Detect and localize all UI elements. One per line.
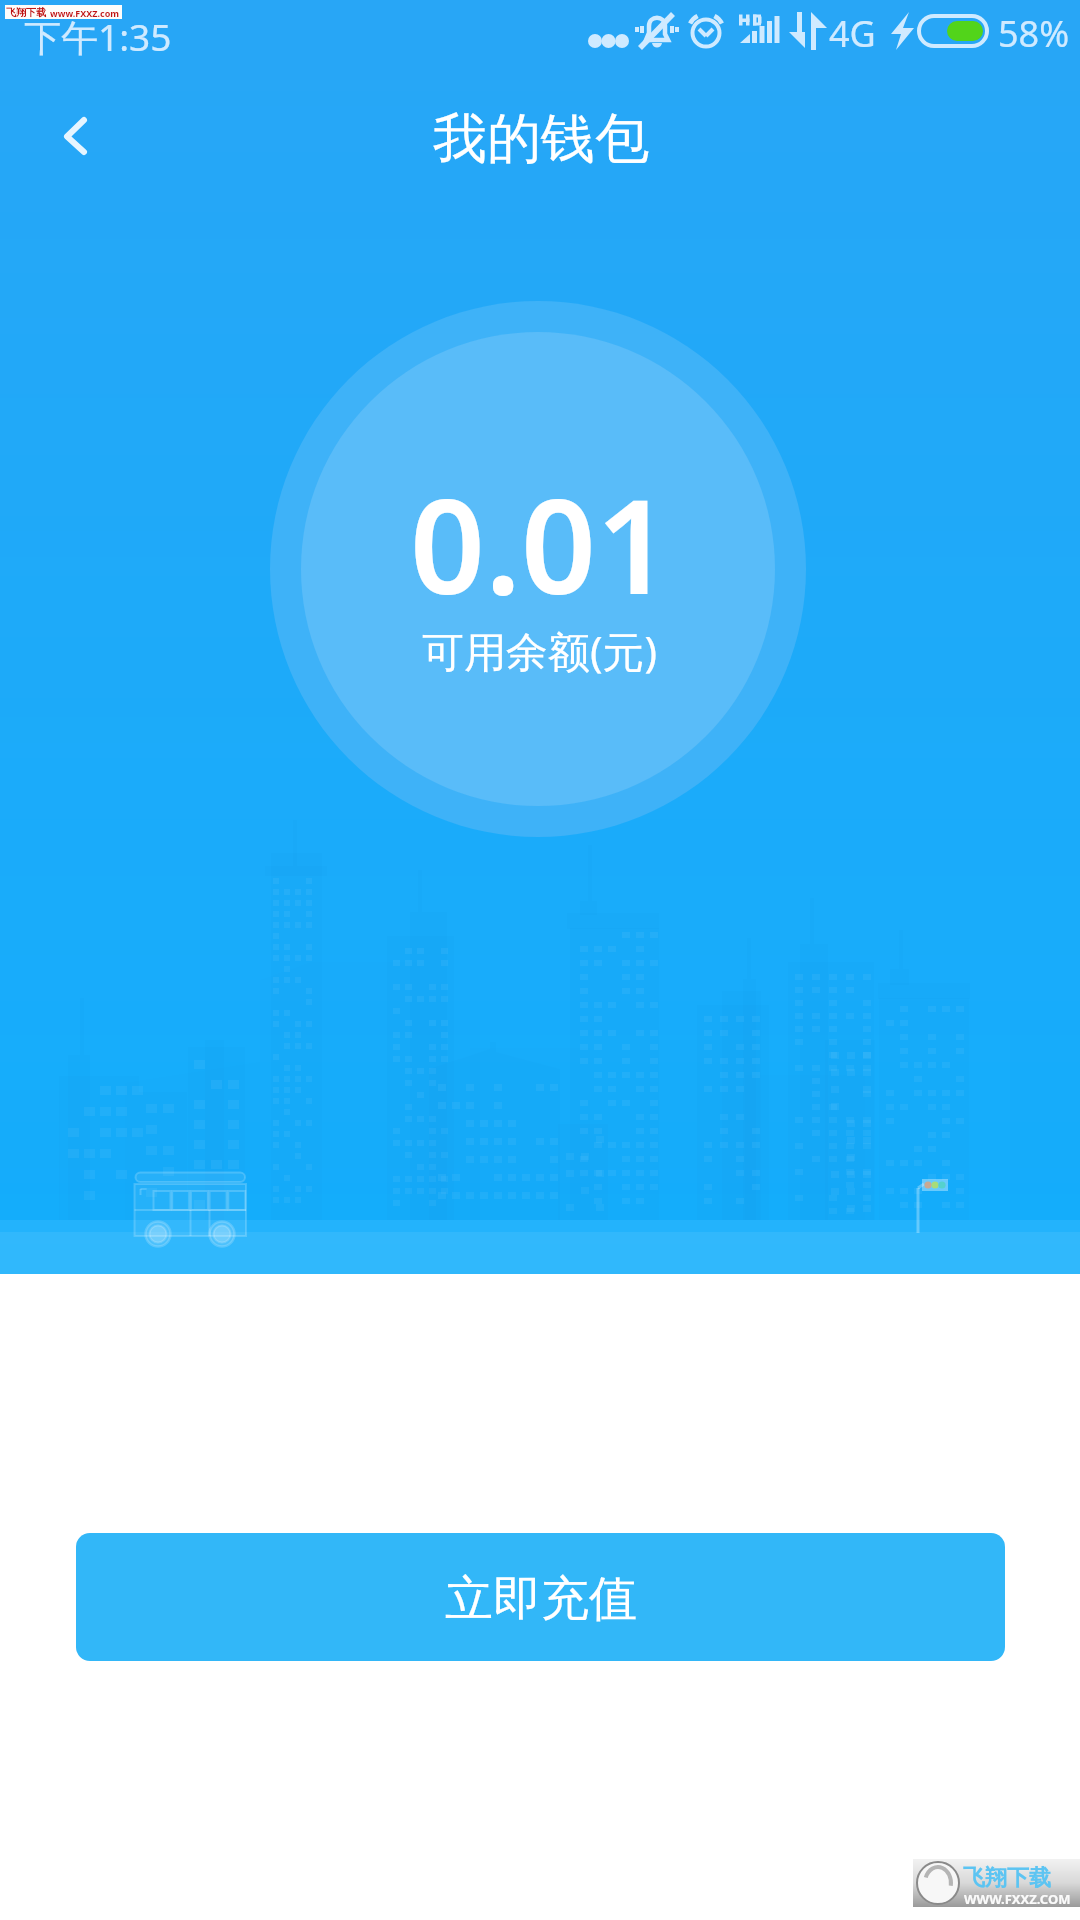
staticText: 下午1:35 xyxy=(24,11,172,62)
staticText: 可用余额(元) xyxy=(422,622,658,679)
button[interactable]: Back xyxy=(34,92,122,180)
staticText: 立即充值 xyxy=(445,1569,637,1629)
staticText: 飞翔下载 xyxy=(6,6,46,19)
staticText: WWW.FXXZ.COM xyxy=(964,1890,1071,1908)
staticText: 58% xyxy=(998,9,1070,58)
staticText: 我的钱包 xyxy=(433,105,649,173)
button[interactable]: 立即充值 xyxy=(76,1533,1005,1661)
staticText: 0.01 xyxy=(410,454,671,632)
staticText: 4G xyxy=(829,9,876,58)
staticText: www.FXXZ.com xyxy=(50,7,120,19)
staticText: 飞翔下载 xyxy=(963,1864,1051,1892)
